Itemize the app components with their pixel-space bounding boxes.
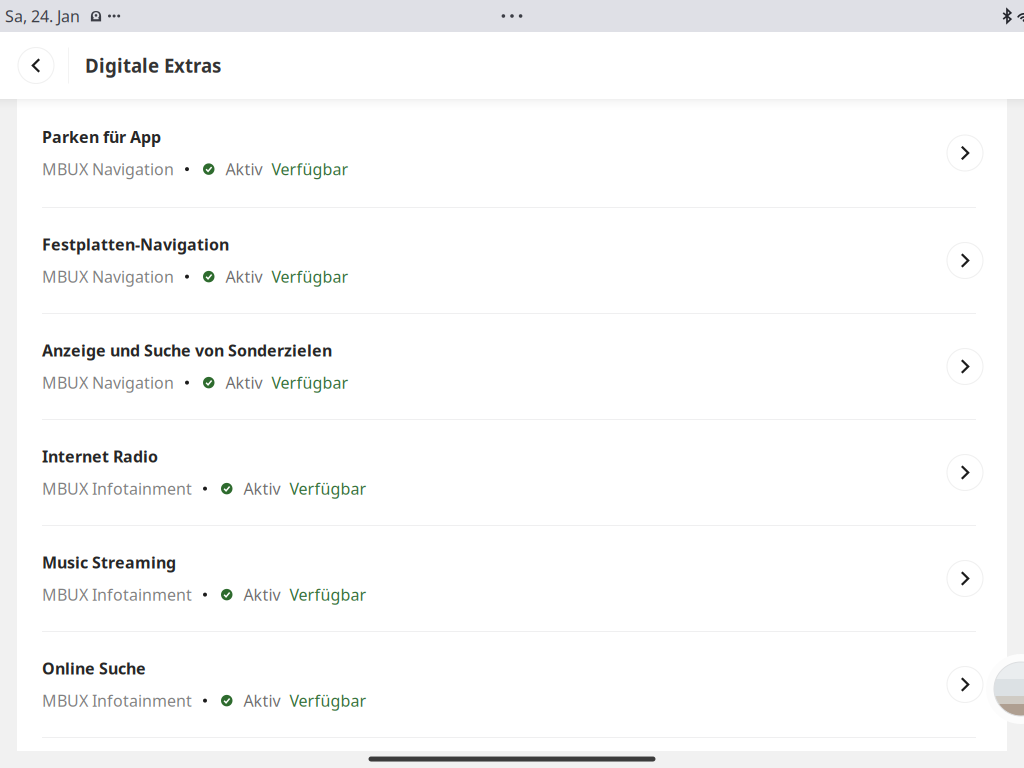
staticText: Verfügbar [271, 266, 348, 287]
staticText: Sa, 24. Jan [5, 5, 80, 27]
staticText: MBUX Infotainment [42, 690, 192, 711]
staticText: MBUX Navigation [42, 266, 174, 287]
button[interactable]: Anzeige und Suche von Sonderzielen [17, 314, 1007, 420]
staticText: Verfügbar [271, 372, 348, 393]
staticText: Aktiv [225, 158, 262, 180]
staticText: Aktiv [243, 690, 280, 711]
button[interactable]: Parken für App [17, 99, 1007, 208]
button[interactable]: Online Suche [17, 632, 1007, 738]
staticText: Anzeige und Suche von Sonderzielen [42, 340, 332, 361]
staticText: Aktiv [225, 372, 262, 393]
staticText: Verfügbar [271, 158, 348, 180]
button[interactable]: Festplatten-Navigation [17, 208, 1007, 314]
staticText: Verfügbar [289, 478, 366, 499]
button[interactable]: Music Streaming [17, 526, 1007, 632]
staticText: Parken für App [42, 126, 161, 147]
button[interactable]: Back [18, 47, 54, 83]
staticText: Verfügbar [289, 584, 366, 605]
staticText: MBUX Navigation [42, 372, 174, 393]
staticText: MBUX Infotainment [42, 478, 192, 499]
staticText: Digitale Extras [85, 53, 221, 78]
staticText: Online Suche [42, 658, 146, 679]
staticText: Aktiv [243, 584, 280, 605]
staticText: Aktiv [243, 478, 280, 499]
staticText: MBUX Infotainment [42, 584, 192, 605]
staticText: Aktiv [225, 266, 262, 287]
staticText: Music Streaming [42, 552, 176, 573]
staticText: Festplatten-Navigation [42, 234, 229, 255]
button[interactable]: Internet Radio [17, 420, 1007, 526]
staticText: MBUX Navigation [42, 158, 174, 180]
staticText: Internet Radio [42, 446, 158, 467]
staticText: Verfügbar [289, 690, 366, 711]
